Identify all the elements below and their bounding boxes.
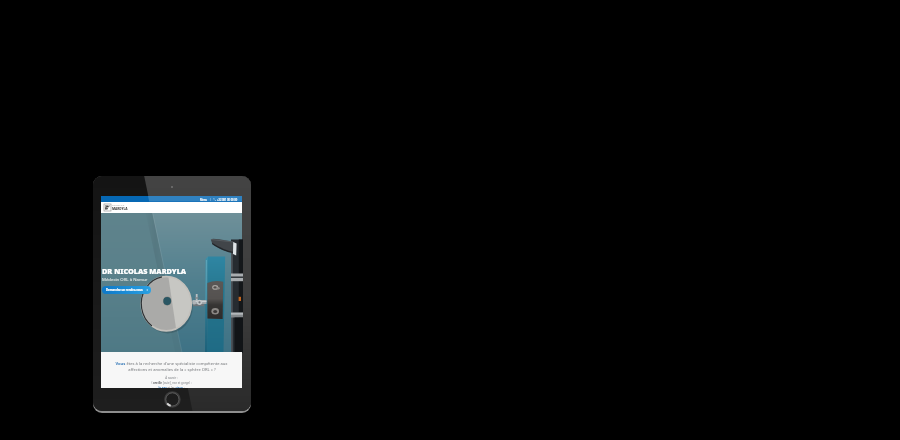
- button[interactable]: NICOLAS: [104, 204, 128, 211]
- button[interactable]: Demandez un rendez-vous: [102, 286, 151, 294]
- staticText: Menu: [200, 198, 207, 201]
- staticText: +32 081 00 00 00: [217, 198, 238, 201]
- staticText: Demandez un rendez-vous: [106, 288, 143, 292]
- staticText: le nez et les sinus :: [158, 386, 185, 388]
- button[interactable]: Call phone number: [213, 198, 238, 201]
- staticText: Médecin ORL à Namur: [102, 276, 148, 282]
- staticText: NICOLAS: [112, 204, 125, 207]
- staticText: MARDYLA: [112, 207, 128, 211]
- staticText: À savoir :: [165, 376, 178, 380]
- staticText: DR NICOLAS MARDYLA: [102, 266, 187, 276]
- staticText: ( oreille [ouïe], nez et gorge) :: [151, 381, 192, 385]
- staticText: affections et anomalies de la « sphère O…: [128, 367, 216, 373]
- staticText: Vous êtes à la recherche d'une spécialis…: [115, 361, 228, 367]
- button[interactable]: Menu: [199, 198, 208, 201]
